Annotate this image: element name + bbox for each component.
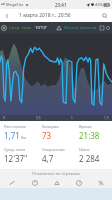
staticText: 10'13" xyxy=(35,25,48,31)
staticText: 73 xyxy=(42,130,52,141)
staticText: Сред. темп xyxy=(4,147,26,152)
staticText: 0 xyxy=(3,116,5,120)
staticText: Высота уклонов xyxy=(64,25,97,31)
button[interactable]: Cadence xyxy=(90,177,112,188)
button[interactable]: Расстояние xyxy=(0,121,38,144)
button[interactable]: Speed xyxy=(68,177,90,188)
staticText: Шаги xyxy=(79,147,90,152)
button[interactable]: Pace metric xyxy=(0,24,8,32)
button[interactable]: Шаги xyxy=(75,144,112,169)
staticText: 1,5 xyxy=(104,116,109,120)
staticText: 1 xyxy=(71,116,73,120)
staticText: 12'37" xyxy=(4,153,28,164)
button[interactable]: Elevation metric xyxy=(55,24,63,32)
staticText: 4,7 xyxy=(42,153,54,164)
button[interactable]: Время xyxy=(75,121,112,144)
staticText: 1,71 xyxy=(4,130,20,141)
staticText: Расстояние xyxy=(4,124,27,129)
button[interactable]: Time xyxy=(23,177,46,188)
staticText: 0,5 xyxy=(36,116,41,120)
staticText: Км xyxy=(21,135,27,140)
staticText: MegaFon xyxy=(6,2,24,7)
staticText: 1 марта 2018 г., 20:56 xyxy=(19,12,71,19)
button[interactable]: More options xyxy=(105,25,111,31)
button[interactable]: Elevation xyxy=(46,177,68,188)
staticText: Сред. темп xyxy=(9,25,32,31)
button[interactable]: Калории xyxy=(38,121,75,144)
staticText: Показатель по отрезкам xyxy=(32,171,80,176)
staticText: Калории xyxy=(42,124,59,129)
staticText: 21:38 xyxy=(79,130,100,141)
staticText: Скоростная xyxy=(42,147,65,152)
staticText: 43% xyxy=(95,2,103,7)
button[interactable]: Search xyxy=(98,9,111,22)
staticText: 23:41 xyxy=(55,2,67,8)
button[interactable]: Expand chart xyxy=(99,25,105,31)
staticText: Время xyxy=(79,124,92,129)
button[interactable]: Back xyxy=(0,9,13,22)
button[interactable]: Pace xyxy=(0,177,23,188)
button[interactable]: Сред. темп xyxy=(0,144,38,169)
staticText: 2 284 xyxy=(79,153,100,164)
button[interactable]: Скоростная xyxy=(38,144,75,169)
